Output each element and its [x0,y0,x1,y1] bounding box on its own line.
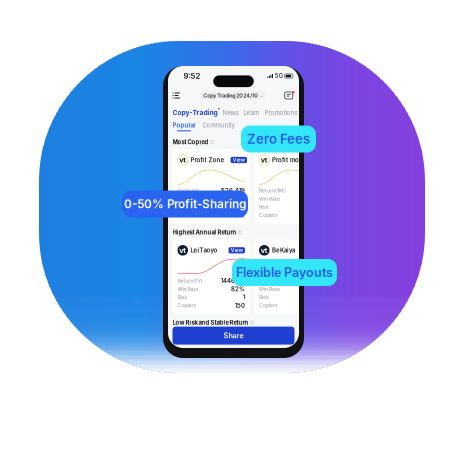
button[interactable]: Copy-Trading [172,108,217,117]
button[interactable]: vt [172,149,250,223]
staticText: BeKaiya [272,247,295,254]
staticText: 312 [235,212,245,219]
staticText: News [222,109,238,116]
staticText: Low Risk and Stable Return [172,319,248,326]
button[interactable]: Menu [172,90,185,101]
button[interactable]: Zero Fees [241,125,316,152]
button[interactable]: vt [254,239,331,314]
button[interactable]: Popular [172,122,195,131]
staticText: Promotions [264,109,297,116]
staticText: Copiers [259,212,278,218]
staticText: 14460% [221,277,245,284]
staticText: i [211,140,212,144]
button[interactable]: 0-50% Profit-Sharing [122,190,248,217]
staticText: 9:52 [183,71,200,81]
staticText: 0-50% Profit-Sharing [124,197,246,211]
staticText: 5G [275,72,283,79]
staticText: Copiers [177,302,196,308]
button[interactable]: View [230,157,247,163]
button[interactable]: Learn [243,109,259,116]
staticText: vt [179,246,186,255]
staticText: 61% [233,203,245,211]
staticText: Risk [259,204,269,210]
staticText: Copiers [177,212,196,218]
button[interactable]: News [222,109,238,116]
staticText: View [231,247,243,253]
staticText: Win Rate [259,196,280,202]
button[interactable]: vt [254,149,331,223]
staticText: Zero Fees [247,131,310,147]
staticText: Popular [172,122,195,129]
staticText: Flexible Payouts [236,265,333,280]
staticText: vt [179,156,186,164]
staticText: Most Copied [172,138,208,146]
button[interactable]: Community [202,122,234,131]
staticText: i [251,320,252,325]
button[interactable]: Messages [281,90,294,101]
staticText: Learn [243,109,259,116]
staticText: LeiTaoyo [190,247,217,254]
staticText: Return(1M) [177,196,204,202]
staticText: 150 [235,302,245,309]
staticText: View [233,157,245,163]
staticText: 73.2% [226,195,245,202]
staticText: Share [223,331,243,340]
staticText: Win Rate [259,286,280,292]
staticText: $26,419 [221,187,245,194]
staticText: Win Rate [177,204,198,210]
staticText: Risk [177,294,187,300]
staticText: Copiers [259,302,278,308]
staticText: Copy-Trading [172,108,217,117]
staticText: Profit mo... [272,156,305,164]
button[interactable]: Flexible Payouts [232,259,337,286]
staticText: Copy Trading 2024/10 [203,92,258,99]
staticText: vt [261,156,268,164]
staticText: Profit Zone [190,156,224,164]
button[interactable]: Share [172,327,294,345]
staticText: Copy Val. [177,187,199,194]
staticText: 82% [231,286,245,293]
staticText: i [239,230,240,234]
staticText: 1 [243,294,245,301]
button[interactable]: Copy Trading 2024/10 [199,91,268,100]
staticText: Return(1Y) [177,278,202,284]
button[interactable]: vt [172,239,250,314]
staticText: Highest Annual Return [172,229,236,236]
staticText: Return(1M) [259,187,286,194]
staticText: vt [261,246,268,255]
staticText: ⌄ [260,93,264,98]
staticText: Win Rate [177,286,198,292]
staticText: Risk [259,294,269,300]
button[interactable]: View [228,247,245,253]
button[interactable]: Promotions [264,109,297,116]
staticText: Community [202,122,234,129]
